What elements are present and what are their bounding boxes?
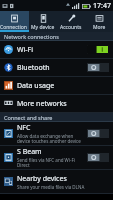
button[interactable]: More: [85, 11, 113, 32]
button[interactable]: S Beam: [0, 146, 113, 169]
staticText: Network connections: [4, 33, 59, 40]
staticText: S Beam: [17, 147, 42, 157]
button[interactable]: Nearby devices: [0, 170, 113, 193]
staticText: Connect and share: [4, 114, 53, 121]
staticText: 17:47: [93, 1, 111, 11]
staticText: Share your media files via DLNA: [17, 184, 85, 190]
button[interactable]: Switch off: [87, 129, 109, 138]
button[interactable]: Data usage: [0, 77, 113, 94]
button[interactable]: Switch on: [87, 45, 109, 54]
button[interactable]: Connections: [0, 11, 29, 32]
staticText: Data usage: [17, 81, 55, 91]
button[interactable]: Switch off: [87, 153, 109, 162]
staticText: More networks: [17, 99, 67, 109]
staticText: Bluetooth: [17, 63, 50, 73]
button[interactable]: Bluetooth: [0, 59, 113, 76]
button[interactable]: More networks: [0, 95, 113, 112]
button[interactable]: My device: [29, 11, 57, 32]
staticText: Allow data exchange when device touches …: [17, 133, 81, 145]
staticText: More: [93, 24, 106, 31]
button[interactable]: NFC: [0, 122, 113, 145]
staticText: NFC: [17, 123, 31, 133]
button[interactable]: Accounts: [57, 11, 85, 32]
staticText: Nearby devices: [17, 174, 67, 184]
button[interactable]: Wi-Fi: [0, 41, 113, 58]
button[interactable]: Switch off: [87, 63, 109, 72]
staticText: Connections: [0, 24, 29, 31]
staticText: My device: [31, 24, 55, 31]
staticText: Send files via NFC and Wi-Fi Direct: [17, 157, 75, 169]
staticText: Wi-Fi: [17, 45, 34, 55]
staticText: Accounts: [60, 24, 82, 31]
